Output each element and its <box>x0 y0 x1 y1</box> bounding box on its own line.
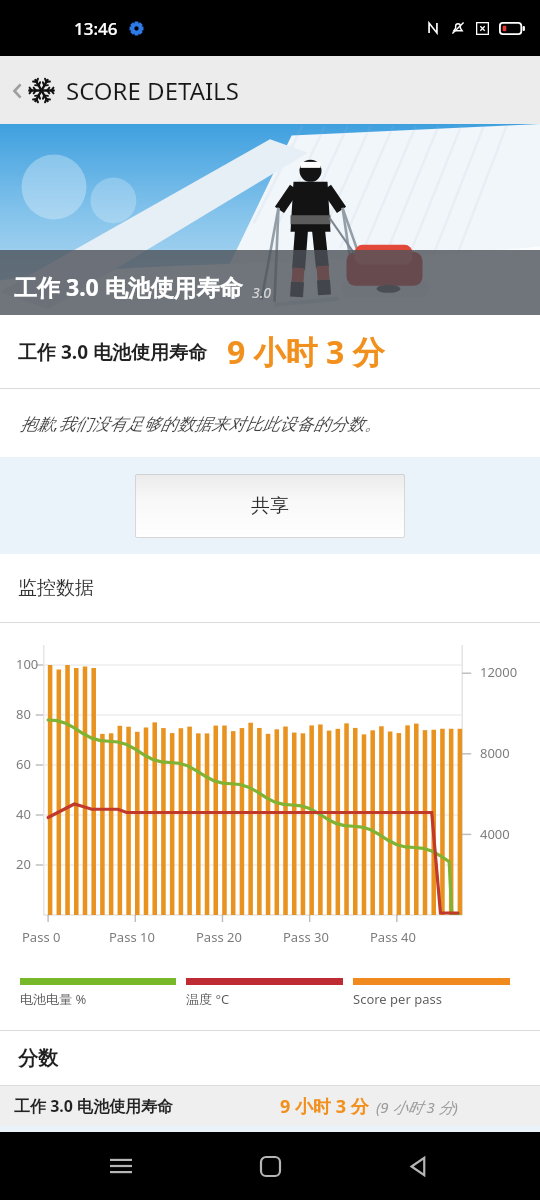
staticText: 温度 °C <box>186 990 230 1008</box>
staticText: 4000 <box>480 825 510 843</box>
button[interactable]: Home <box>242 1138 298 1194</box>
staticText: 8000 <box>480 744 510 762</box>
button[interactable]: Back <box>6 68 245 113</box>
staticText: Pass 0 <box>22 928 61 946</box>
staticText: 监控数据 <box>18 576 94 600</box>
staticText: 12000 <box>480 663 518 681</box>
button[interactable]: 工作 3.0 电池使用寿命 <box>0 1086 540 1126</box>
staticText: Score per pass <box>353 990 442 1008</box>
other: Back <box>12 80 23 102</box>
staticText: 60 <box>16 755 31 773</box>
staticText: 13:46 <box>74 17 118 40</box>
staticText: Pass 20 <box>196 928 242 946</box>
staticText: 9 小时 3 分 <box>227 330 385 374</box>
staticText: 抱歉,我们没有足够的数据来对比此设备的分数。 <box>20 412 382 435</box>
staticText: 3.0 <box>252 283 272 302</box>
staticText: 工作 3.0 电池使用寿命 <box>18 339 207 365</box>
staticText: 电池电量 % <box>20 990 87 1008</box>
staticText: 9 小时 3 分 <box>280 1094 369 1119</box>
button[interactable]: Back <box>391 1138 447 1194</box>
staticText: (9 小时 3 分) <box>376 1097 458 1117</box>
button[interactable]: Recents <box>93 1138 149 1194</box>
staticText: 分数 <box>18 1046 58 1071</box>
staticText: 40 <box>16 805 31 823</box>
staticText: 20 <box>16 855 31 873</box>
staticText: Pass 30 <box>283 928 329 946</box>
staticText: SCORE DETAILS <box>66 74 239 107</box>
staticText: Pass 40 <box>370 928 416 946</box>
staticText: 共享 <box>251 494 289 518</box>
staticText: Pass 10 <box>109 928 155 946</box>
button[interactable]: 共享 <box>135 474 405 538</box>
staticText: 工作 3.0 电池使用寿命 <box>14 1095 174 1117</box>
staticText: 工作 3.0 电池使用寿命 <box>14 271 243 302</box>
staticText: 100 <box>16 655 39 673</box>
staticText: 80 <box>16 705 31 723</box>
